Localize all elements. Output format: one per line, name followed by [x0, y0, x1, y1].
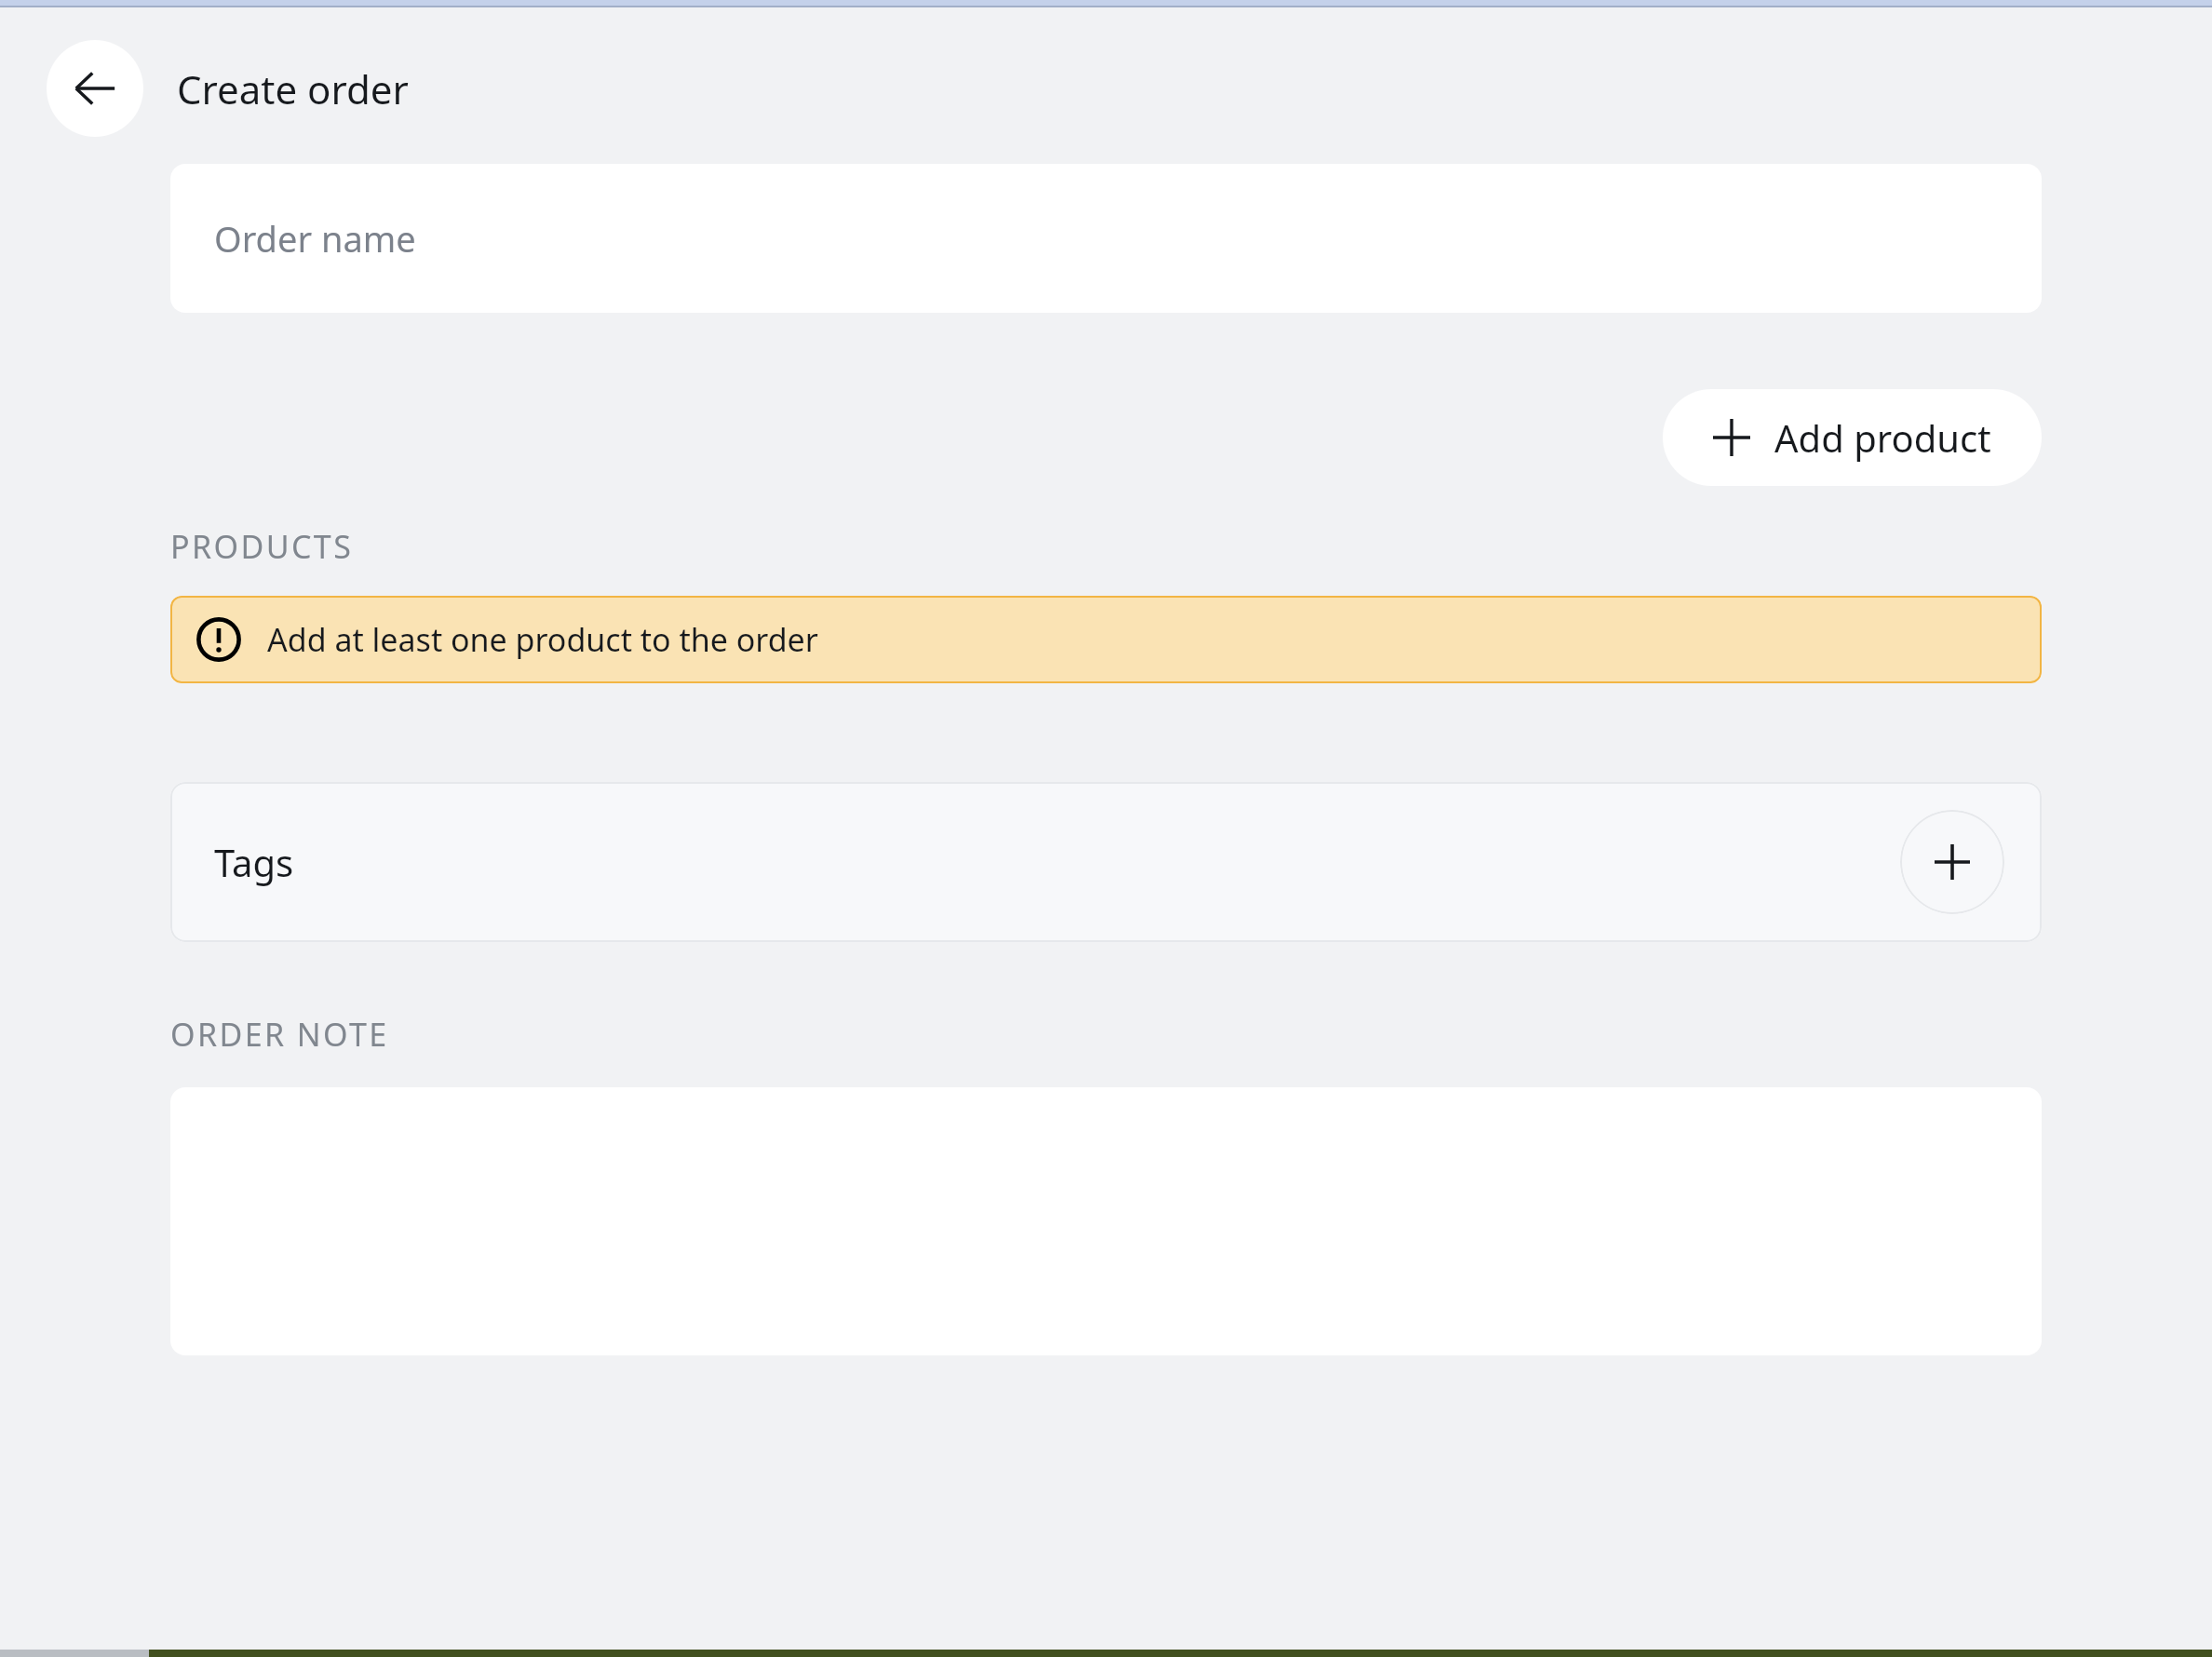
staticText: ORDER NOTE [170, 1013, 389, 1056]
button[interactable]: Add product [1663, 389, 2042, 486]
button[interactable]: Tags [170, 782, 2042, 942]
button[interactable]: Add at least one product to the order [170, 596, 2042, 683]
button[interactable]: Add tag [1900, 810, 2004, 914]
staticText: Order name [214, 214, 416, 263]
button[interactable]: Back [47, 40, 143, 137]
button[interactable]: Order name [170, 164, 2042, 313]
staticText: Add product [1774, 412, 1991, 463]
staticText: Create order [177, 62, 409, 115]
staticText: Add at least one product to the order [267, 618, 818, 661]
staticText: Tags [214, 837, 294, 887]
staticText: PRODUCTS [170, 525, 354, 568]
